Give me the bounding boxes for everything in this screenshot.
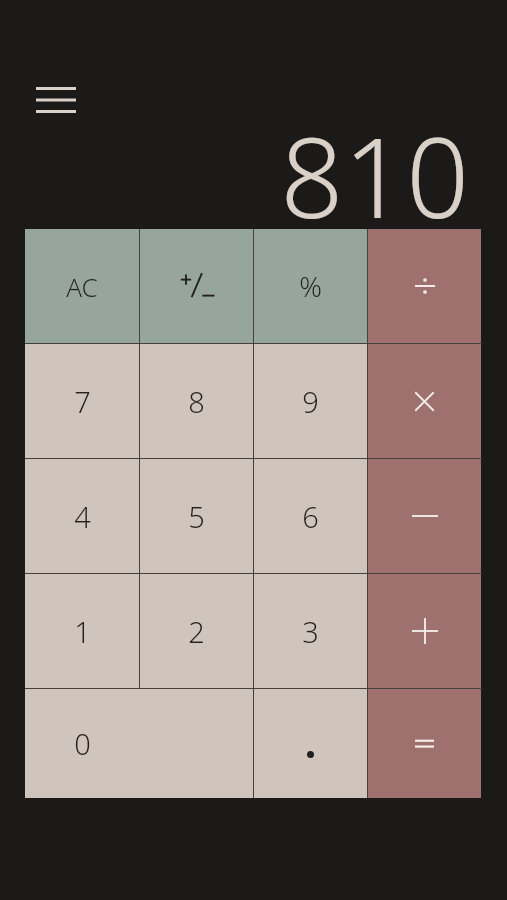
staticText: 9 [302, 382, 319, 421]
staticText: 810 [280, 100, 469, 220]
button[interactable]: 5 [140, 459, 253, 573]
button[interactable]: 3 [254, 574, 367, 688]
button[interactable]: Menu [22, 72, 90, 128]
button[interactable]: 8 [140, 344, 253, 458]
button[interactable]: 1 [25, 574, 139, 688]
button[interactable]: 0 [25, 689, 253, 798]
button[interactable]: Subtract [368, 459, 481, 573]
button[interactable]: AC [25, 229, 139, 343]
staticText: 6 [302, 497, 319, 536]
staticText: % [299, 267, 322, 305]
button[interactable]: 9 [254, 344, 367, 458]
staticText: AC [66, 269, 98, 304]
button[interactable]: 7 [25, 344, 139, 458]
staticText: 2 [188, 612, 205, 651]
button[interactable]: Multiply [368, 344, 481, 458]
button[interactable]: 4 [25, 459, 139, 573]
button[interactable]: Equals [368, 689, 481, 798]
staticText: 7 [74, 382, 91, 421]
button[interactable]: 2 [140, 574, 253, 688]
staticText: 8 [188, 382, 205, 421]
staticText: 0 [74, 724, 91, 763]
button[interactable]: Add [368, 574, 481, 688]
staticText: 4 [74, 497, 91, 536]
button[interactable]: 6 [254, 459, 367, 573]
button[interactable]: Divide [368, 229, 481, 343]
staticText: 1 [74, 612, 91, 651]
button[interactable]: Plus minus [140, 229, 253, 343]
staticText: 5 [188, 497, 205, 536]
staticText: 3 [302, 612, 319, 651]
button[interactable]: % [254, 229, 367, 343]
button[interactable] [254, 689, 367, 798]
